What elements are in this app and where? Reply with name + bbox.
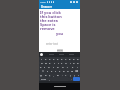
button[interactable]: , — [47, 77, 51, 81]
button[interactable]: _ — [52, 73, 56, 77]
button[interactable]: 5 — [56, 57, 60, 61]
button[interactable]: o — [72, 61, 76, 65]
button[interactable]: 3 — [48, 57, 52, 61]
button[interactable]: i — [68, 61, 72, 65]
staticText: ( — [70, 74, 71, 77]
button[interactable]: - — [60, 73, 64, 77]
button[interactable]: 9 — [72, 57, 76, 61]
staticText: k — [72, 66, 74, 69]
button[interactable]: ⌫ — [74, 69, 80, 73]
button[interactable]: 2 — [44, 57, 48, 61]
staticText: j — [67, 66, 68, 69]
button[interactable]: l — [75, 65, 80, 69]
button[interactable]: 1 — [39, 57, 44, 61]
button[interactable]: 7 — [64, 57, 68, 61]
staticText: y — [61, 62, 63, 65]
button[interactable]: x — [50, 69, 54, 73]
staticText: 6 — [61, 58, 63, 61]
button[interactable]: z — [46, 69, 50, 73]
staticText: ⇧ — [42, 70, 44, 73]
staticText: , — [49, 78, 50, 81]
staticText: 3 — [49, 58, 51, 61]
staticText: 7 — [65, 58, 67, 61]
button[interactable]: @ — [39, 73, 44, 77]
button[interactable]: y — [60, 61, 64, 65]
staticText: p — [77, 62, 79, 65]
staticText: 10:48 — [40, 1, 46, 4]
button[interactable]: n — [66, 69, 70, 73]
button[interactable]: j — [65, 65, 70, 69]
button[interactable]: r — [52, 61, 56, 65]
staticText: c — [55, 70, 57, 73]
staticText: n — [67, 70, 69, 73]
button[interactable]: & — [56, 73, 60, 77]
staticText: 0 — [77, 58, 79, 61]
button[interactable]: b — [62, 69, 66, 73]
button[interactable]: u — [64, 61, 68, 65]
button[interactable]: 0 — [76, 57, 80, 61]
staticText: - — [62, 74, 63, 77]
button[interactable]: # — [44, 73, 48, 77]
staticText: & — [57, 74, 59, 77]
staticText: . — [71, 78, 72, 81]
staticText: e — [49, 62, 51, 65]
button[interactable]: a — [39, 65, 43, 69]
button[interactable]: / — [76, 73, 80, 77]
button[interactable]: 8 — [68, 57, 72, 61]
button[interactable]: c — [54, 69, 58, 73]
button[interactable]: h — [60, 65, 65, 69]
staticText: r — [54, 62, 55, 65]
button[interactable]: . — [69, 77, 73, 81]
button[interactable]: k — [70, 65, 75, 69]
staticText: ?123 — [41, 78, 46, 81]
button[interactable]: q — [39, 61, 44, 65]
staticText: 5 — [57, 58, 59, 61]
button[interactable]: 6 — [60, 57, 64, 61]
button[interactable]: ?123 — [39, 77, 47, 81]
staticText: _ — [53, 74, 55, 77]
staticText: / — [78, 74, 79, 77]
staticText: w — [45, 62, 47, 65]
button[interactable]: ( — [68, 73, 72, 77]
staticText: $ — [49, 74, 51, 77]
button[interactable]: f — [51, 65, 55, 69]
button[interactable]: p — [76, 61, 80, 65]
button[interactable]: t — [56, 61, 60, 65]
staticText: q — [41, 62, 43, 65]
staticText: f — [53, 66, 54, 69]
staticText: 9 — [73, 58, 75, 61]
button[interactable]: Keyboard settings — [40, 53, 43, 56]
button[interactable]: m — [70, 69, 74, 73]
button[interactable]: g — [55, 65, 60, 69]
staticText: you — [39, 31, 80, 36]
staticText: 8 — [69, 58, 71, 61]
staticText: ⌫ — [75, 70, 79, 73]
button[interactable]: v — [58, 69, 62, 73]
staticText: u — [65, 62, 67, 65]
button[interactable]: w — [44, 61, 48, 65]
button[interactable] — [73, 77, 80, 81]
button[interactable]: $ — [48, 73, 52, 77]
staticText: m — [71, 70, 74, 73]
button[interactable]: ) — [72, 73, 76, 77]
button[interactable]: 4 — [52, 57, 56, 61]
staticText: x — [51, 70, 53, 73]
staticText: h — [62, 66, 64, 69]
staticText: a — [40, 66, 42, 69]
staticText: v — [59, 70, 61, 73]
staticText: @ — [40, 74, 43, 77]
button[interactable]: + — [64, 73, 68, 77]
staticText: + — [65, 74, 67, 77]
staticText: 4 — [53, 58, 55, 61]
button[interactable]: e — [48, 61, 52, 65]
staticText: t — [58, 62, 59, 65]
staticText: i — [70, 62, 71, 65]
button[interactable]: s — [43, 65, 47, 69]
button[interactable]: d — [47, 65, 51, 69]
button[interactable]: SEND — [57, 49, 63, 52]
staticText: enter text — [46, 42, 58, 46]
staticText: Browser — [41, 5, 53, 9]
staticText: ) — [74, 74, 75, 77]
button[interactable]: ⇧ — [39, 69, 46, 73]
